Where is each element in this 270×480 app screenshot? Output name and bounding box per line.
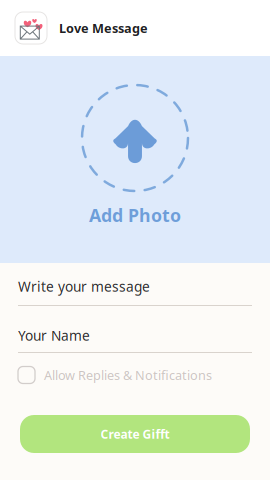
button[interactable]: Your Name (18, 326, 252, 353)
button[interactable]: Write your message (18, 277, 252, 306)
staticText: Add Photo (89, 203, 181, 227)
staticText: Love Message (59, 19, 148, 37)
button[interactable]: Allow Replies & Notifications (18, 366, 252, 384)
staticText: Your Name (18, 326, 90, 345)
staticText: Create Gifft (100, 426, 169, 442)
button[interactable]: Create Gifft (20, 415, 250, 453)
button[interactable]: Add Photo (82, 85, 188, 227)
staticText: Write your message (18, 277, 150, 296)
staticText: Allow Replies & Notifications (44, 366, 212, 384)
